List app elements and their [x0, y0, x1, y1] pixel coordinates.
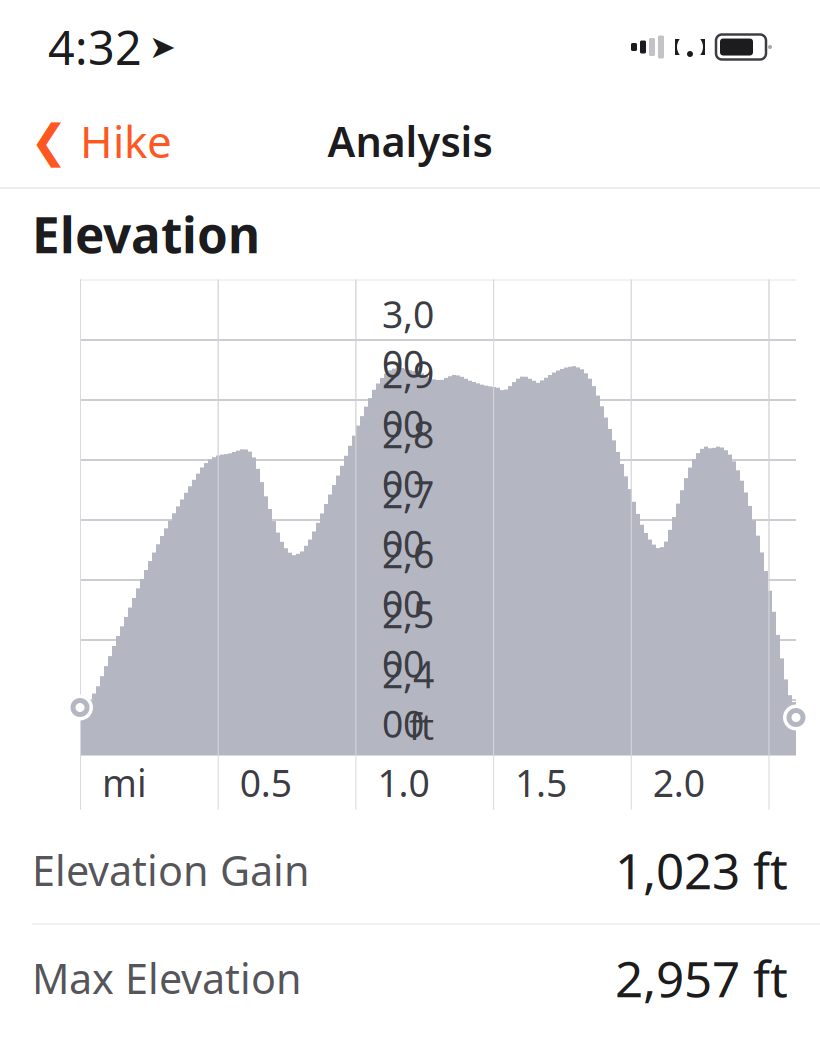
staticText: 2,900	[382, 349, 434, 448]
button[interactable]: ❮	[0, 102, 172, 180]
staticText: 3,000	[382, 289, 434, 388]
button[interactable]: Max Elevation	[0, 924, 820, 1031]
staticText: 2,600	[382, 529, 434, 628]
staticText: Hike	[80, 112, 172, 170]
staticText: 1.0	[377, 758, 429, 807]
staticText: 1,023 ft	[615, 837, 788, 903]
staticText: 2.0	[653, 758, 705, 807]
staticText: Max Elevation	[32, 951, 302, 1005]
staticText: ➤	[149, 29, 176, 65]
staticText: ft	[409, 702, 434, 750]
staticText: 0.5	[240, 758, 292, 807]
staticText: 2,400	[382, 649, 434, 748]
staticText: Analysis	[327, 114, 492, 168]
staticText: Elevation	[32, 201, 260, 267]
staticText: mi	[102, 758, 147, 807]
staticText: 2,700	[382, 469, 434, 568]
staticText: Elevation Gain	[32, 843, 310, 897]
staticText: 1.5	[515, 758, 567, 807]
staticText: 2,800	[382, 409, 434, 508]
staticText: 4:32	[48, 16, 142, 78]
staticText: 2,500	[382, 589, 434, 688]
button[interactable]: Elevation Gain	[0, 816, 820, 923]
staticText: ❮	[30, 115, 68, 167]
staticText: 2,957 ft	[615, 945, 788, 1011]
